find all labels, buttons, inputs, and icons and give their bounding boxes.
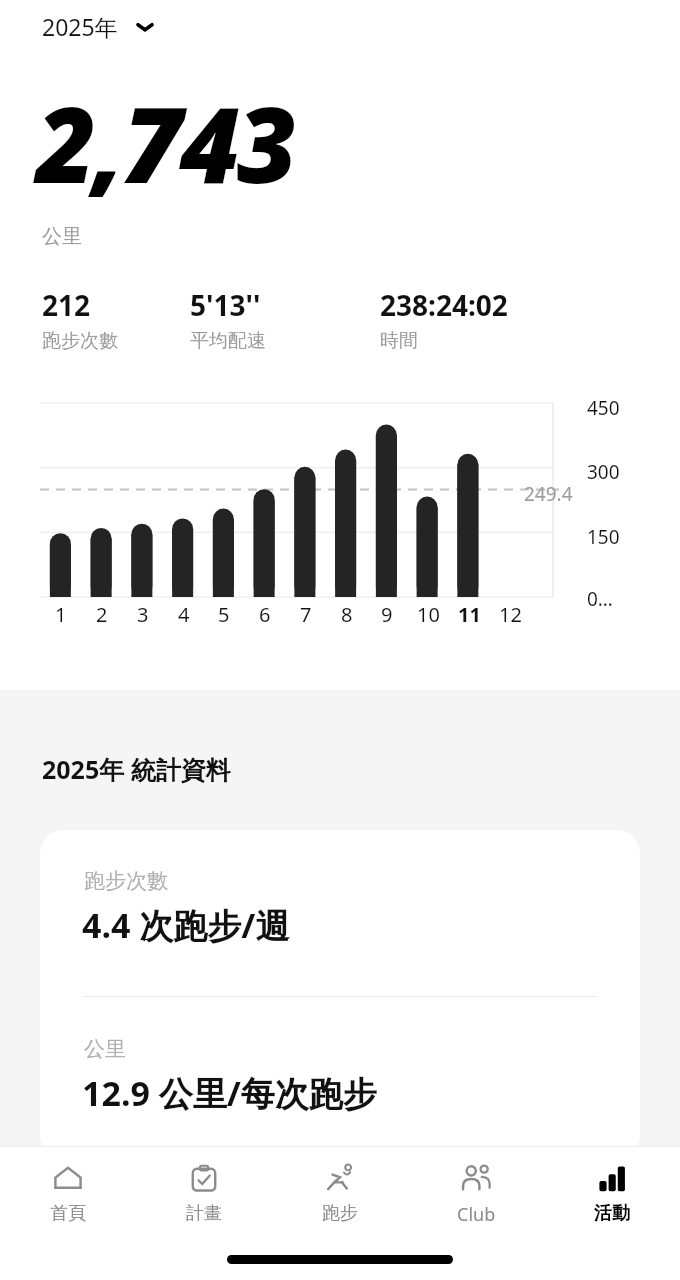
button[interactable]: 計畫 bbox=[136, 1162, 272, 1225]
staticText: 活動 bbox=[594, 1202, 630, 1225]
staticText: 1 bbox=[55, 601, 67, 628]
button[interactable]: 跑步 bbox=[272, 1162, 408, 1225]
staticText: 時間 bbox=[380, 329, 418, 353]
staticText: 249.4 bbox=[524, 481, 573, 507]
staticText: 跑步次數 bbox=[42, 329, 118, 353]
staticText: 10 bbox=[417, 601, 440, 628]
button[interactable]: 2025年 bbox=[34, 6, 164, 47]
staticText: 150 bbox=[587, 524, 620, 550]
staticText: 238:24:02 bbox=[380, 286, 508, 324]
staticText: 2,743 bbox=[36, 72, 295, 214]
button[interactable]: Club bbox=[408, 1162, 544, 1227]
button[interactable]: 5'13'' bbox=[190, 286, 380, 353]
staticText: 2025年 統計資料 bbox=[42, 752, 231, 786]
staticText: 平均配速 bbox=[190, 329, 266, 353]
staticText: 5 bbox=[218, 601, 230, 628]
staticText: 6 bbox=[259, 601, 271, 628]
staticText: 4 bbox=[178, 601, 190, 628]
staticText: 8 bbox=[341, 601, 353, 628]
staticText: 12 bbox=[499, 601, 522, 628]
staticText: 9 bbox=[381, 601, 393, 628]
staticText: 公里 bbox=[42, 224, 82, 249]
button[interactable]: 首頁 bbox=[0, 1162, 136, 1225]
staticText: 7 bbox=[300, 601, 312, 628]
staticText: 公里 bbox=[84, 1036, 126, 1062]
staticText: 3 bbox=[137, 601, 149, 628]
staticText: 212 bbox=[42, 286, 91, 324]
staticText: 450 bbox=[587, 395, 620, 421]
button[interactable]: 212 bbox=[42, 286, 190, 353]
staticText: 跑步次數 bbox=[84, 868, 168, 894]
staticText: 0… bbox=[587, 586, 613, 612]
button[interactable]: 跑步次數 bbox=[40, 830, 640, 1160]
staticText: Club bbox=[457, 1202, 496, 1227]
button[interactable]: 活動 bbox=[544, 1162, 680, 1225]
staticText: 跑步 bbox=[322, 1202, 358, 1225]
staticText: 2025年 bbox=[42, 11, 118, 42]
staticText: 首頁 bbox=[50, 1202, 86, 1225]
staticText: 計畫 bbox=[186, 1202, 222, 1225]
staticText: 5'13'' bbox=[190, 286, 261, 324]
button[interactable]: 238:24:02 bbox=[380, 286, 600, 353]
staticText: 4.4 次跑步/週 bbox=[82, 902, 290, 948]
staticText: 300 bbox=[587, 459, 620, 485]
staticText: 12.9 公里/每次跑步 bbox=[82, 1070, 377, 1116]
staticText: 11 bbox=[458, 601, 481, 628]
staticText: 2 bbox=[96, 601, 108, 628]
